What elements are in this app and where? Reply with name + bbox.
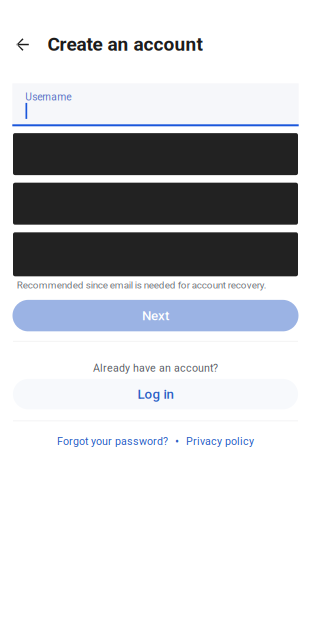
staticText: Create an account	[47, 33, 202, 55]
button[interactable]: Privacy policy	[186, 435, 254, 448]
button[interactable]: Log in	[13, 379, 298, 409]
staticText: Recommended since email is needed for ac…	[17, 279, 267, 291]
staticText: Username	[25, 91, 71, 103]
staticText: Privacy policy	[186, 435, 254, 448]
button[interactable]: Next	[12, 300, 298, 331]
staticText: Forgot your password?	[57, 435, 168, 448]
staticText: •	[175, 434, 179, 448]
button[interactable]: Back	[8, 29, 36, 57]
staticText: Next	[142, 308, 169, 323]
button[interactable]: Forgot your password?	[57, 435, 168, 448]
staticText: Already have an account?	[93, 362, 218, 374]
staticText: Log in	[137, 386, 173, 402]
